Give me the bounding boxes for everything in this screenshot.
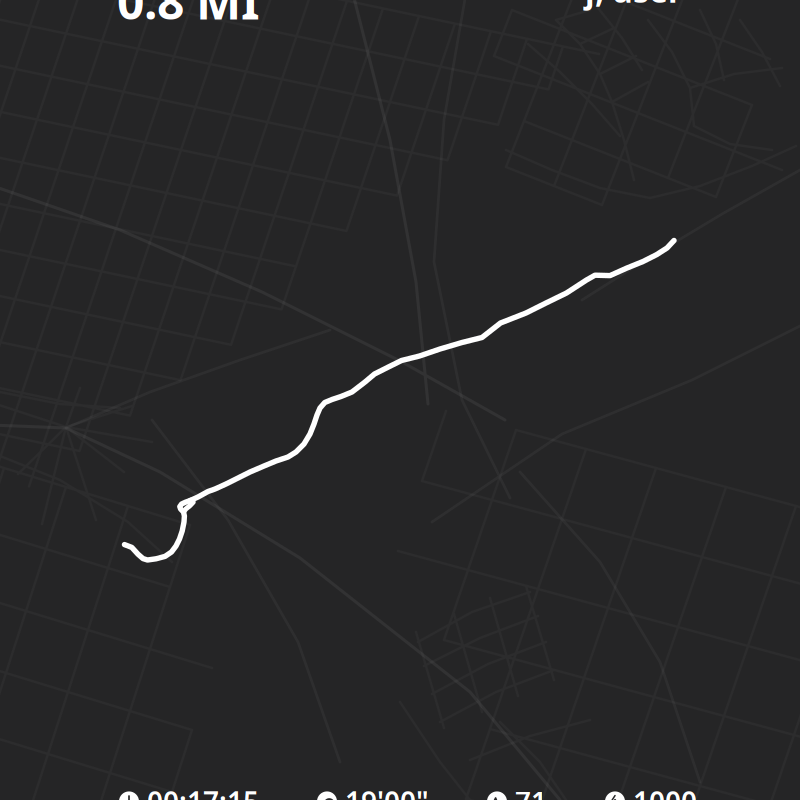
staticText: 19'00" [345,783,429,800]
staticText: j, user [585,0,682,11]
staticText: 71 [515,783,547,800]
staticText: 0.8 MI [117,0,260,33]
staticText: 1000 [633,783,697,800]
staticText: 00:17:15 [147,783,259,800]
